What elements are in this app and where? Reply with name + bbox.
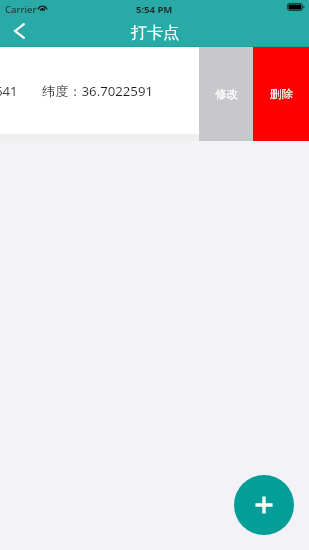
staticText: 删除 [270,87,293,101]
button[interactable]: 修改 [199,47,253,141]
button[interactable]: Back [0,19,44,47]
staticText: 纬度：36.7022591 [42,82,153,100]
staticText: Carrier [5,3,37,16]
staticText: 打卡点 [131,23,179,43]
staticText: 修改 [215,87,238,101]
staticText: 5:54 PM [136,3,173,16]
button[interactable]: 删除 [253,47,309,141]
staticText: 641 [0,82,18,100]
button[interactable]: 641 [0,47,199,141]
button[interactable]: Add [234,475,294,535]
